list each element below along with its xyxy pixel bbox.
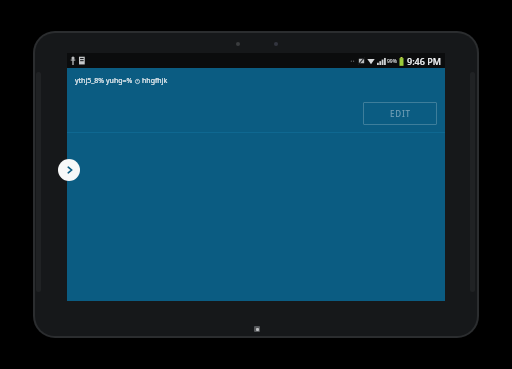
- staticText: hhgfhjk: [142, 76, 168, 86]
- staticText: 9:46 PM: [407, 55, 441, 67]
- staticText: EDIT: [390, 108, 411, 119]
- button[interactable]: EDIT: [363, 102, 437, 125]
- staticText: ythj5_8% yuhg=%: [75, 76, 133, 86]
- staticText: 99%: [387, 58, 397, 65]
- button[interactable]: Next: [58, 159, 80, 181]
